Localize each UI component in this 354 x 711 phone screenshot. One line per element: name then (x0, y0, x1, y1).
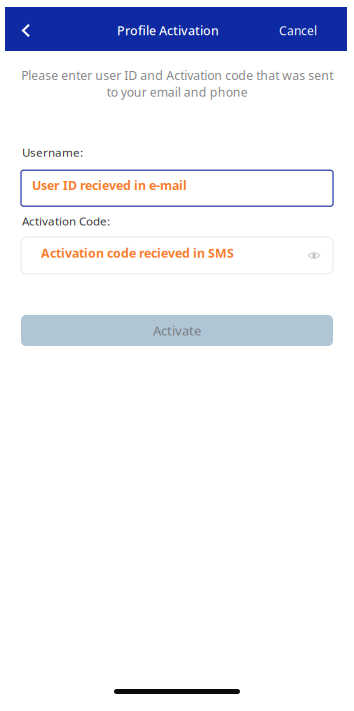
button[interactable]: Activate (21, 315, 333, 346)
staticText: Username: (22, 144, 83, 160)
staticText: Profile Activation (117, 22, 219, 39)
staticText: Activation code recieved in SMS (41, 245, 234, 261)
button[interactable]: Back (5, 7, 47, 51)
staticText: User ID recieved in e-mail (32, 177, 187, 194)
staticText: Please enter user ID and Activation code… (21, 67, 333, 100)
button[interactable]: Cancel (269, 7, 347, 51)
staticText: Activation Code: (22, 213, 110, 229)
staticText: Cancel (279, 22, 317, 39)
staticText: Activate (153, 322, 201, 339)
button[interactable]: Show activation code (301, 237, 327, 273)
